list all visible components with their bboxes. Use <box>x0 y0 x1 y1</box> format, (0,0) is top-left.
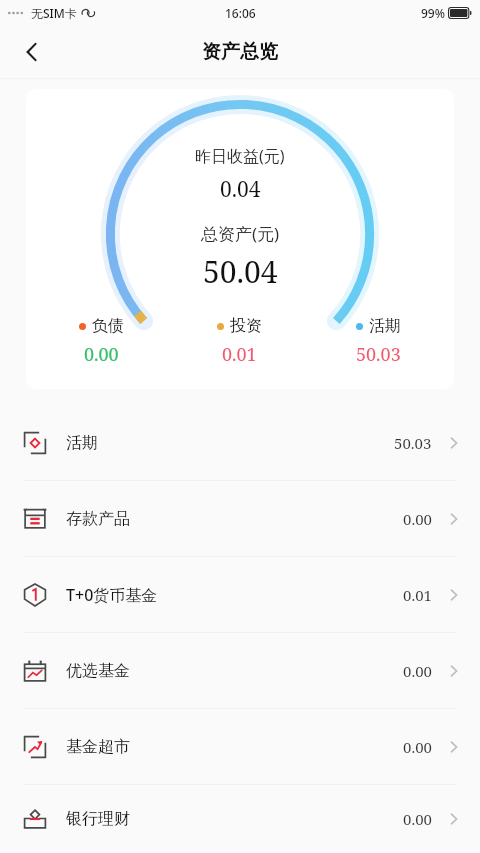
staticText: 99% <box>421 5 445 21</box>
staticText: 总资产(元) <box>201 222 280 245</box>
staticText: 0.00 <box>84 342 119 367</box>
staticText: 基金超市 <box>66 737 130 757</box>
staticText: 0.00 <box>403 809 432 829</box>
staticText: 0.00 <box>403 509 432 529</box>
button[interactable]: 活期 <box>0 405 480 480</box>
staticText: 0.00 <box>403 737 432 757</box>
button[interactable]: T+0货币基金 <box>0 557 480 632</box>
staticText: 投资 <box>230 316 262 336</box>
staticText: 0.01 <box>222 342 257 367</box>
staticText: 50.04 <box>203 251 278 292</box>
staticText: 16:06 <box>225 5 256 21</box>
staticText: 活期 <box>66 433 98 453</box>
staticText: 昨日收益(元) <box>195 145 285 167</box>
button[interactable]: 负债 <box>32 316 170 367</box>
staticText: 50.03 <box>356 342 401 367</box>
button[interactable]: 投资 <box>170 316 309 367</box>
staticText: 存款产品 <box>66 509 130 529</box>
staticText: 资产总览 <box>202 40 278 64</box>
button[interactable]: 活期 <box>309 316 448 367</box>
staticText: 无SIM卡 <box>31 5 77 21</box>
button[interactable]: 存款产品 <box>0 481 480 556</box>
button[interactable]: 返回 <box>10 30 54 74</box>
staticText: 活期 <box>369 316 401 336</box>
button[interactable]: 优选基金 <box>0 633 480 708</box>
button[interactable]: 银行理财 <box>0 785 480 853</box>
staticText: 优选基金 <box>66 661 130 681</box>
staticText: 50.03 <box>394 433 432 453</box>
button[interactable]: 基金超市 <box>0 709 480 784</box>
staticText: 0.01 <box>403 585 432 605</box>
staticText: 0.00 <box>403 661 432 681</box>
staticText: 0.04 <box>220 175 261 204</box>
staticText: T+0货币基金 <box>66 584 158 606</box>
staticText: 银行理财 <box>66 809 130 829</box>
staticText: 负债 <box>92 316 124 336</box>
